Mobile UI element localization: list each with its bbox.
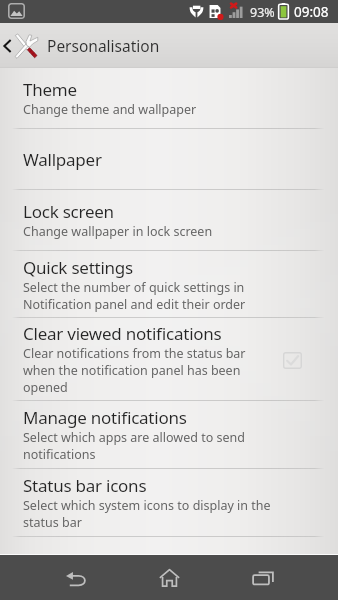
staticText: 93% — [250, 4, 275, 21]
staticText: Quick settings — [23, 256, 133, 279]
button[interactable]: Quick settings — [0, 251, 338, 317]
staticText: when the notification panel has been — [23, 362, 241, 379]
staticText: Lock screen — [23, 200, 114, 223]
button[interactable]: Recent apps — [233, 555, 293, 600]
staticText: Select the number of quick settings in — [23, 279, 245, 296]
button[interactable]: Home — [139, 555, 199, 600]
staticText: Personalisation — [47, 35, 160, 56]
staticText: 09:08 — [294, 3, 329, 21]
staticText: Select which system icons to display in … — [23, 497, 271, 514]
staticText: Change theme and wallpaper — [23, 101, 197, 118]
button[interactable]: Wallpaper — [0, 129, 338, 189]
staticText: opened — [23, 379, 68, 396]
staticText: status bar — [23, 514, 82, 531]
staticText: Change wallpaper in lock screen — [23, 223, 213, 240]
button[interactable]: Status bar icons — [0, 469, 338, 536]
staticText: Theme — [23, 78, 77, 101]
staticText: Clear viewed notifications — [23, 322, 222, 345]
staticText: Manage notifications — [23, 406, 187, 429]
button[interactable]: Clear viewed notifications — [0, 318, 338, 400]
staticText: Status bar icons — [23, 474, 147, 497]
staticText: Wallpaper — [23, 148, 102, 171]
staticText: notifications — [23, 446, 96, 463]
button[interactable]: Back — [46, 555, 106, 600]
staticText: Notification panel and edit their order — [23, 296, 246, 313]
staticText: Clear notifications from the status bar — [23, 345, 246, 362]
staticText: Select which apps are allowed to send — [23, 429, 245, 446]
button[interactable]: Manage notifications — [0, 401, 338, 468]
button[interactable]: Lock screen — [0, 190, 338, 250]
button[interactable]: Theme — [0, 68, 338, 128]
button[interactable]: Navigate up — [0, 23, 14, 68]
